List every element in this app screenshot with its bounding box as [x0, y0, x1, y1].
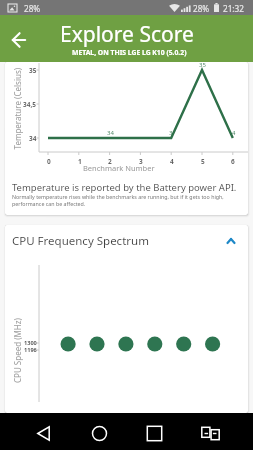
staticText: 34: [29, 134, 37, 143]
staticText: 3: [139, 157, 143, 166]
staticText: METAL, ON THIS LGE LG K10 (5.0.2): [72, 48, 187, 57]
staticText: 34,5: [23, 100, 37, 109]
staticText: 5: [201, 157, 205, 166]
staticText: 35: [29, 66, 37, 75]
staticText: 1300: [24, 339, 37, 347]
staticText: 2: [108, 157, 112, 166]
staticText: Temperature (Celsius): [11, 67, 22, 149]
staticText: 1: [78, 157, 82, 166]
staticText: 4: [170, 157, 174, 166]
staticText: Normally temperature rises while the ben…: [12, 193, 224, 207]
staticText: 34: [107, 129, 114, 137]
staticText: 35: [199, 62, 206, 69]
button[interactable]: Recents: [138, 417, 170, 449]
staticText: 21:32: [223, 3, 244, 14]
staticText: CPU Speed (MHz): [12, 318, 23, 383]
button[interactable]: Back: [3, 24, 35, 56]
staticText: 4: [232, 129, 236, 137]
button[interactable]: Split screen: [194, 417, 226, 449]
staticText: Temperature is reported by the Battery p…: [12, 181, 237, 194]
button[interactable]: Home: [83, 417, 115, 449]
staticText: 6: [231, 157, 235, 166]
button[interactable]: CPU Frequency Spectrum: [5, 225, 248, 257]
staticText: Benchmark Number: [83, 163, 155, 173]
staticText: CPU Frequency Spectrum: [12, 233, 149, 249]
staticText: Explore Score: [60, 20, 194, 49]
button[interactable]: Back: [27, 417, 59, 449]
staticText: 1196: [24, 346, 37, 354]
staticText: 3: [169, 129, 173, 137]
staticText: 0: [47, 157, 51, 166]
staticText: 28%: [193, 3, 210, 14]
staticText: 28%: [24, 3, 41, 14]
